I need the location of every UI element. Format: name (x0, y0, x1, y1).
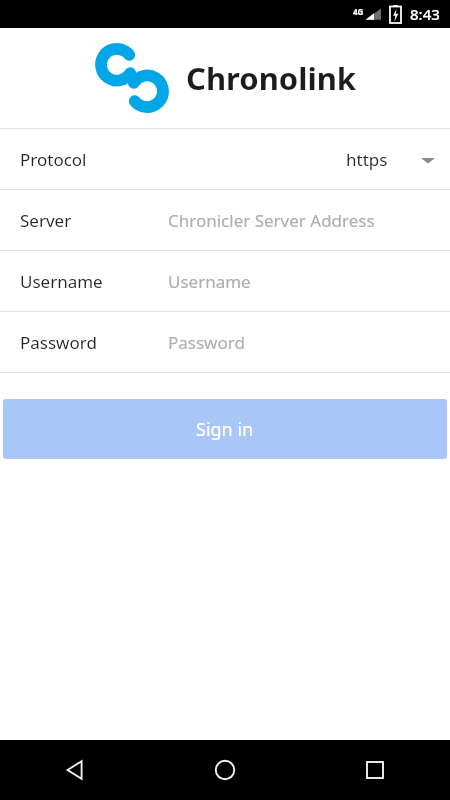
staticText: Chronolink (186, 57, 357, 99)
staticText: Protocol (20, 148, 87, 171)
staticText: Password (20, 331, 97, 354)
staticText: 8:43 (410, 4, 440, 24)
button[interactable]: Password (0, 312, 450, 372)
other: Select protocol (420, 152, 436, 168)
staticText: Username (20, 270, 103, 293)
button[interactable]: Back (0, 740, 150, 800)
button[interactable]: Sign in (3, 399, 447, 459)
button[interactable]: Username (0, 251, 450, 311)
staticText: 4G (353, 6, 364, 17)
staticText: Chronicler Server Address (168, 209, 375, 232)
staticText: Sign in (196, 417, 254, 442)
button[interactable]: Server (0, 190, 450, 250)
button[interactable]: Recent apps (300, 740, 450, 800)
button[interactable]: Home (150, 740, 300, 800)
staticText: Server (20, 209, 72, 232)
button[interactable]: Protocol (0, 129, 450, 189)
staticText: Username (168, 270, 251, 293)
staticText: https (346, 148, 388, 171)
staticText: Password (168, 331, 245, 354)
